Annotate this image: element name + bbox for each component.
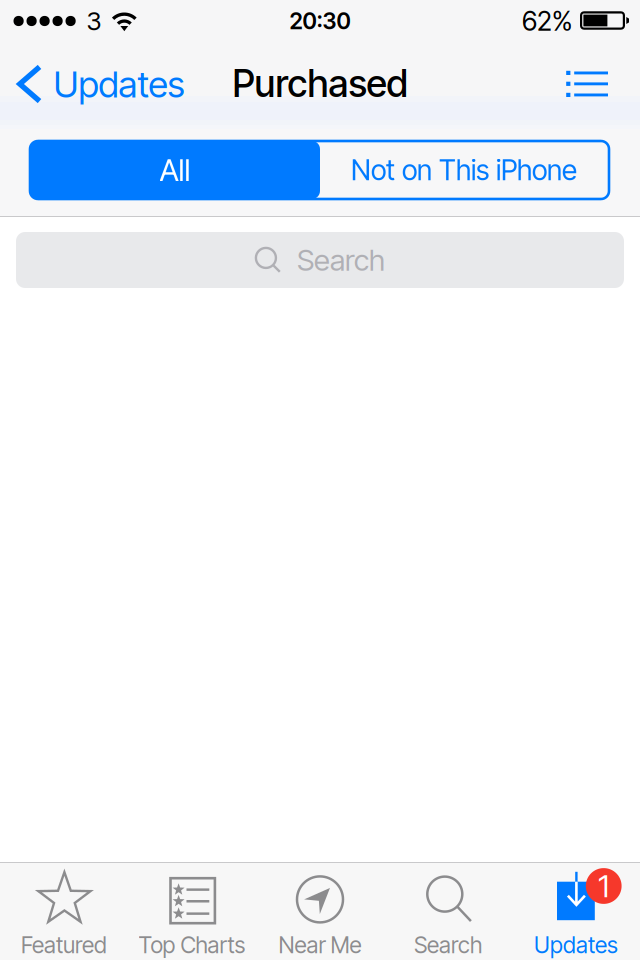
staticText: Updates	[53, 63, 184, 106]
staticText: All	[159, 151, 190, 188]
staticText: 20:30	[289, 7, 350, 35]
staticText: Not on This iPhone	[351, 153, 577, 187]
staticText: Purchased	[232, 61, 407, 106]
staticText: Featured	[21, 931, 107, 959]
button[interactable]: Search	[384, 862, 512, 960]
button[interactable]: Top Charts	[128, 862, 256, 960]
button[interactable]: Featured	[0, 862, 128, 960]
button[interactable]: Search	[16, 232, 624, 288]
staticText: Search	[414, 931, 482, 959]
button[interactable]: Updates	[0, 40, 200, 120]
staticText: 1	[598, 867, 609, 904]
staticText: Search	[297, 242, 385, 278]
staticText: 62%	[522, 5, 572, 37]
staticText: 3	[86, 6, 101, 36]
button[interactable]: Near Me	[256, 862, 384, 960]
staticText: Near Me	[278, 931, 361, 959]
staticText: Top Charts	[138, 931, 245, 959]
staticText: Updates	[534, 931, 618, 959]
button[interactable]: Sort list	[560, 40, 640, 120]
button[interactable]: 1	[512, 862, 640, 960]
